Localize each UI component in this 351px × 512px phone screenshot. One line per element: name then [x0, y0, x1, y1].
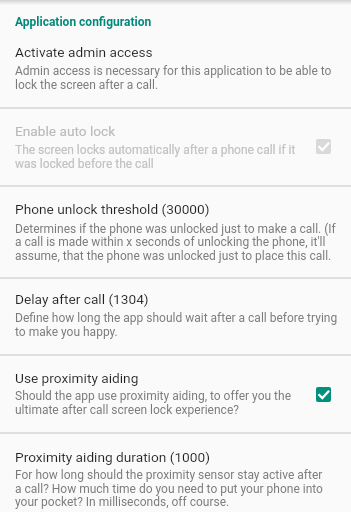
staticText: to make you happy. — [15, 325, 118, 339]
staticText: Enable auto lock — [15, 123, 116, 139]
staticText: was locked before the call — [15, 157, 154, 171]
staticText: The screen locks automatically after a p… — [15, 143, 296, 157]
button[interactable]: Use proximity aiding — [0, 355, 351, 433]
staticText: assume, that the phone was unlocked just… — [15, 249, 332, 263]
button[interactable]: Proximity aiding duration (1000) — [0, 433, 351, 512]
staticText: Determines if the phone was unlocked jus… — [15, 222, 336, 236]
staticText: Phone unlock threshold (30000) — [15, 201, 210, 217]
staticText: Activate admin access — [15, 44, 153, 60]
staticText: Delay after call (1304) — [15, 291, 149, 307]
button[interactable]: Activate admin access — [0, 34, 351, 108]
staticText: Admin access is necessary for this appli… — [15, 64, 332, 78]
staticText: Use proximity aiding — [15, 370, 139, 386]
staticText: a call? How much time do you need to put… — [15, 482, 323, 496]
button[interactable]: Delay after call (1304) — [0, 277, 351, 354]
button[interactable]: Phone unlock threshold (30000) — [0, 186, 351, 278]
staticText: For how long should the proximity sensor… — [15, 468, 323, 482]
staticText: Application configuration — [15, 15, 152, 29]
staticText: Should the app use proximity aiding, to … — [15, 389, 291, 403]
staticText: lock the screen after a call. — [15, 78, 159, 92]
button[interactable]: Enable auto lock — [0, 108, 351, 186]
staticText: Define how long the app should wait afte… — [15, 311, 338, 325]
staticText: ultimate after call screen lock experien… — [15, 403, 239, 417]
staticText: Proximity aiding duration (1000) — [15, 449, 210, 465]
staticText: your pocket? In milliseconds, off course… — [15, 495, 230, 509]
staticText: a call is made within x seconds of unloc… — [15, 235, 326, 249]
